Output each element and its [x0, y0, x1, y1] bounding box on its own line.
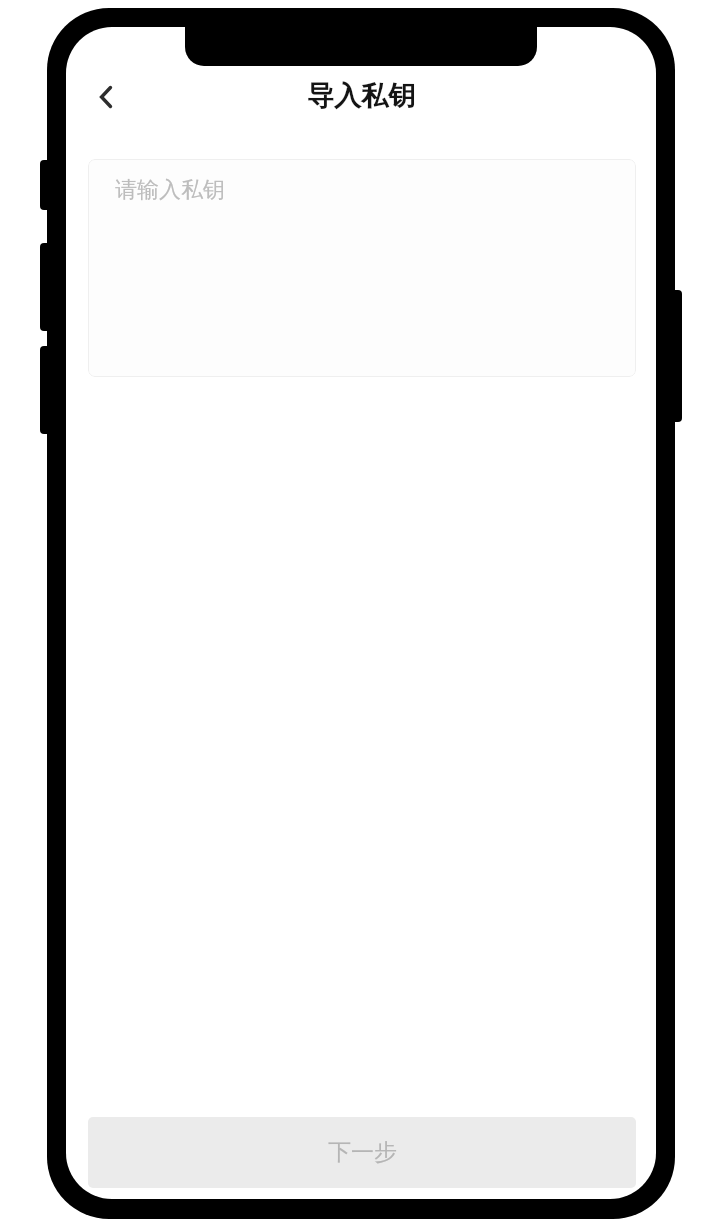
button[interactable]: Back: [78, 70, 134, 124]
button[interactable]: 请输入私钥: [88, 159, 636, 377]
staticText: 请输入私钥: [115, 176, 225, 204]
staticText: 下一步: [328, 1138, 397, 1167]
staticText: 导入私钥: [307, 79, 415, 113]
button[interactable]: 下一步: [88, 1117, 636, 1188]
